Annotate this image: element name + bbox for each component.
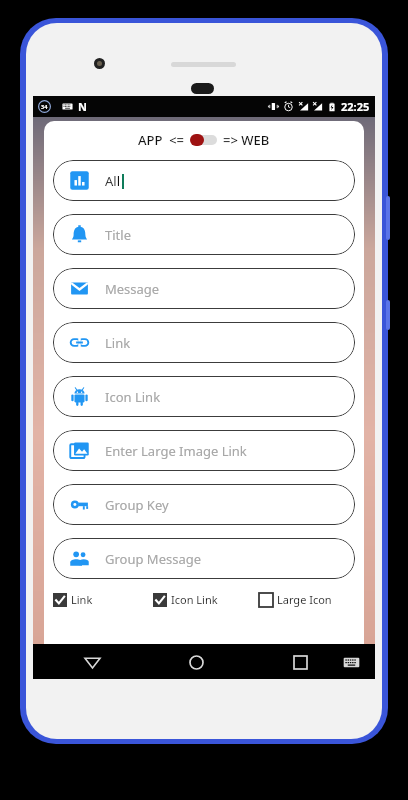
staticText: Title	[105, 226, 131, 244]
button[interactable]: Switch keyboard	[335, 646, 367, 678]
staticText: Group Message	[105, 550, 202, 568]
button[interactable]: Message	[53, 268, 355, 309]
staticText: Group Key	[105, 496, 169, 514]
staticText: 34	[41, 103, 48, 110]
button[interactable]: Home	[179, 645, 213, 679]
staticText: Icon Link	[171, 592, 218, 607]
staticText: Large Icon	[277, 592, 332, 607]
staticText: => WEB	[223, 131, 270, 149]
staticText: Message	[105, 280, 160, 298]
staticText: Icon Link	[105, 388, 161, 406]
button[interactable]: Enter Large Image Link	[53, 430, 355, 471]
staticText: All	[105, 172, 121, 190]
staticText: Link	[105, 334, 131, 352]
button[interactable]: Group Key	[53, 484, 355, 525]
button[interactable]: Link	[53, 322, 355, 363]
button[interactable]	[190, 134, 217, 146]
button[interactable]: Title	[53, 214, 355, 255]
button[interactable]: Link	[53, 592, 153, 607]
staticText: Link	[71, 592, 93, 607]
button[interactable]: Icon Link	[153, 592, 259, 607]
button[interactable]: All	[53, 160, 355, 201]
button[interactable]: Icon Link	[53, 376, 355, 417]
button[interactable]: Back	[75, 645, 109, 679]
staticText: 22:25	[341, 99, 370, 114]
button[interactable]: Recents	[283, 645, 317, 679]
staticText: APP <=	[138, 131, 185, 149]
staticText: Enter Large Image Link	[105, 442, 247, 460]
button[interactable]: Large Icon	[259, 592, 355, 607]
staticText: N	[78, 99, 87, 114]
button[interactable]: Group Message	[53, 538, 355, 579]
